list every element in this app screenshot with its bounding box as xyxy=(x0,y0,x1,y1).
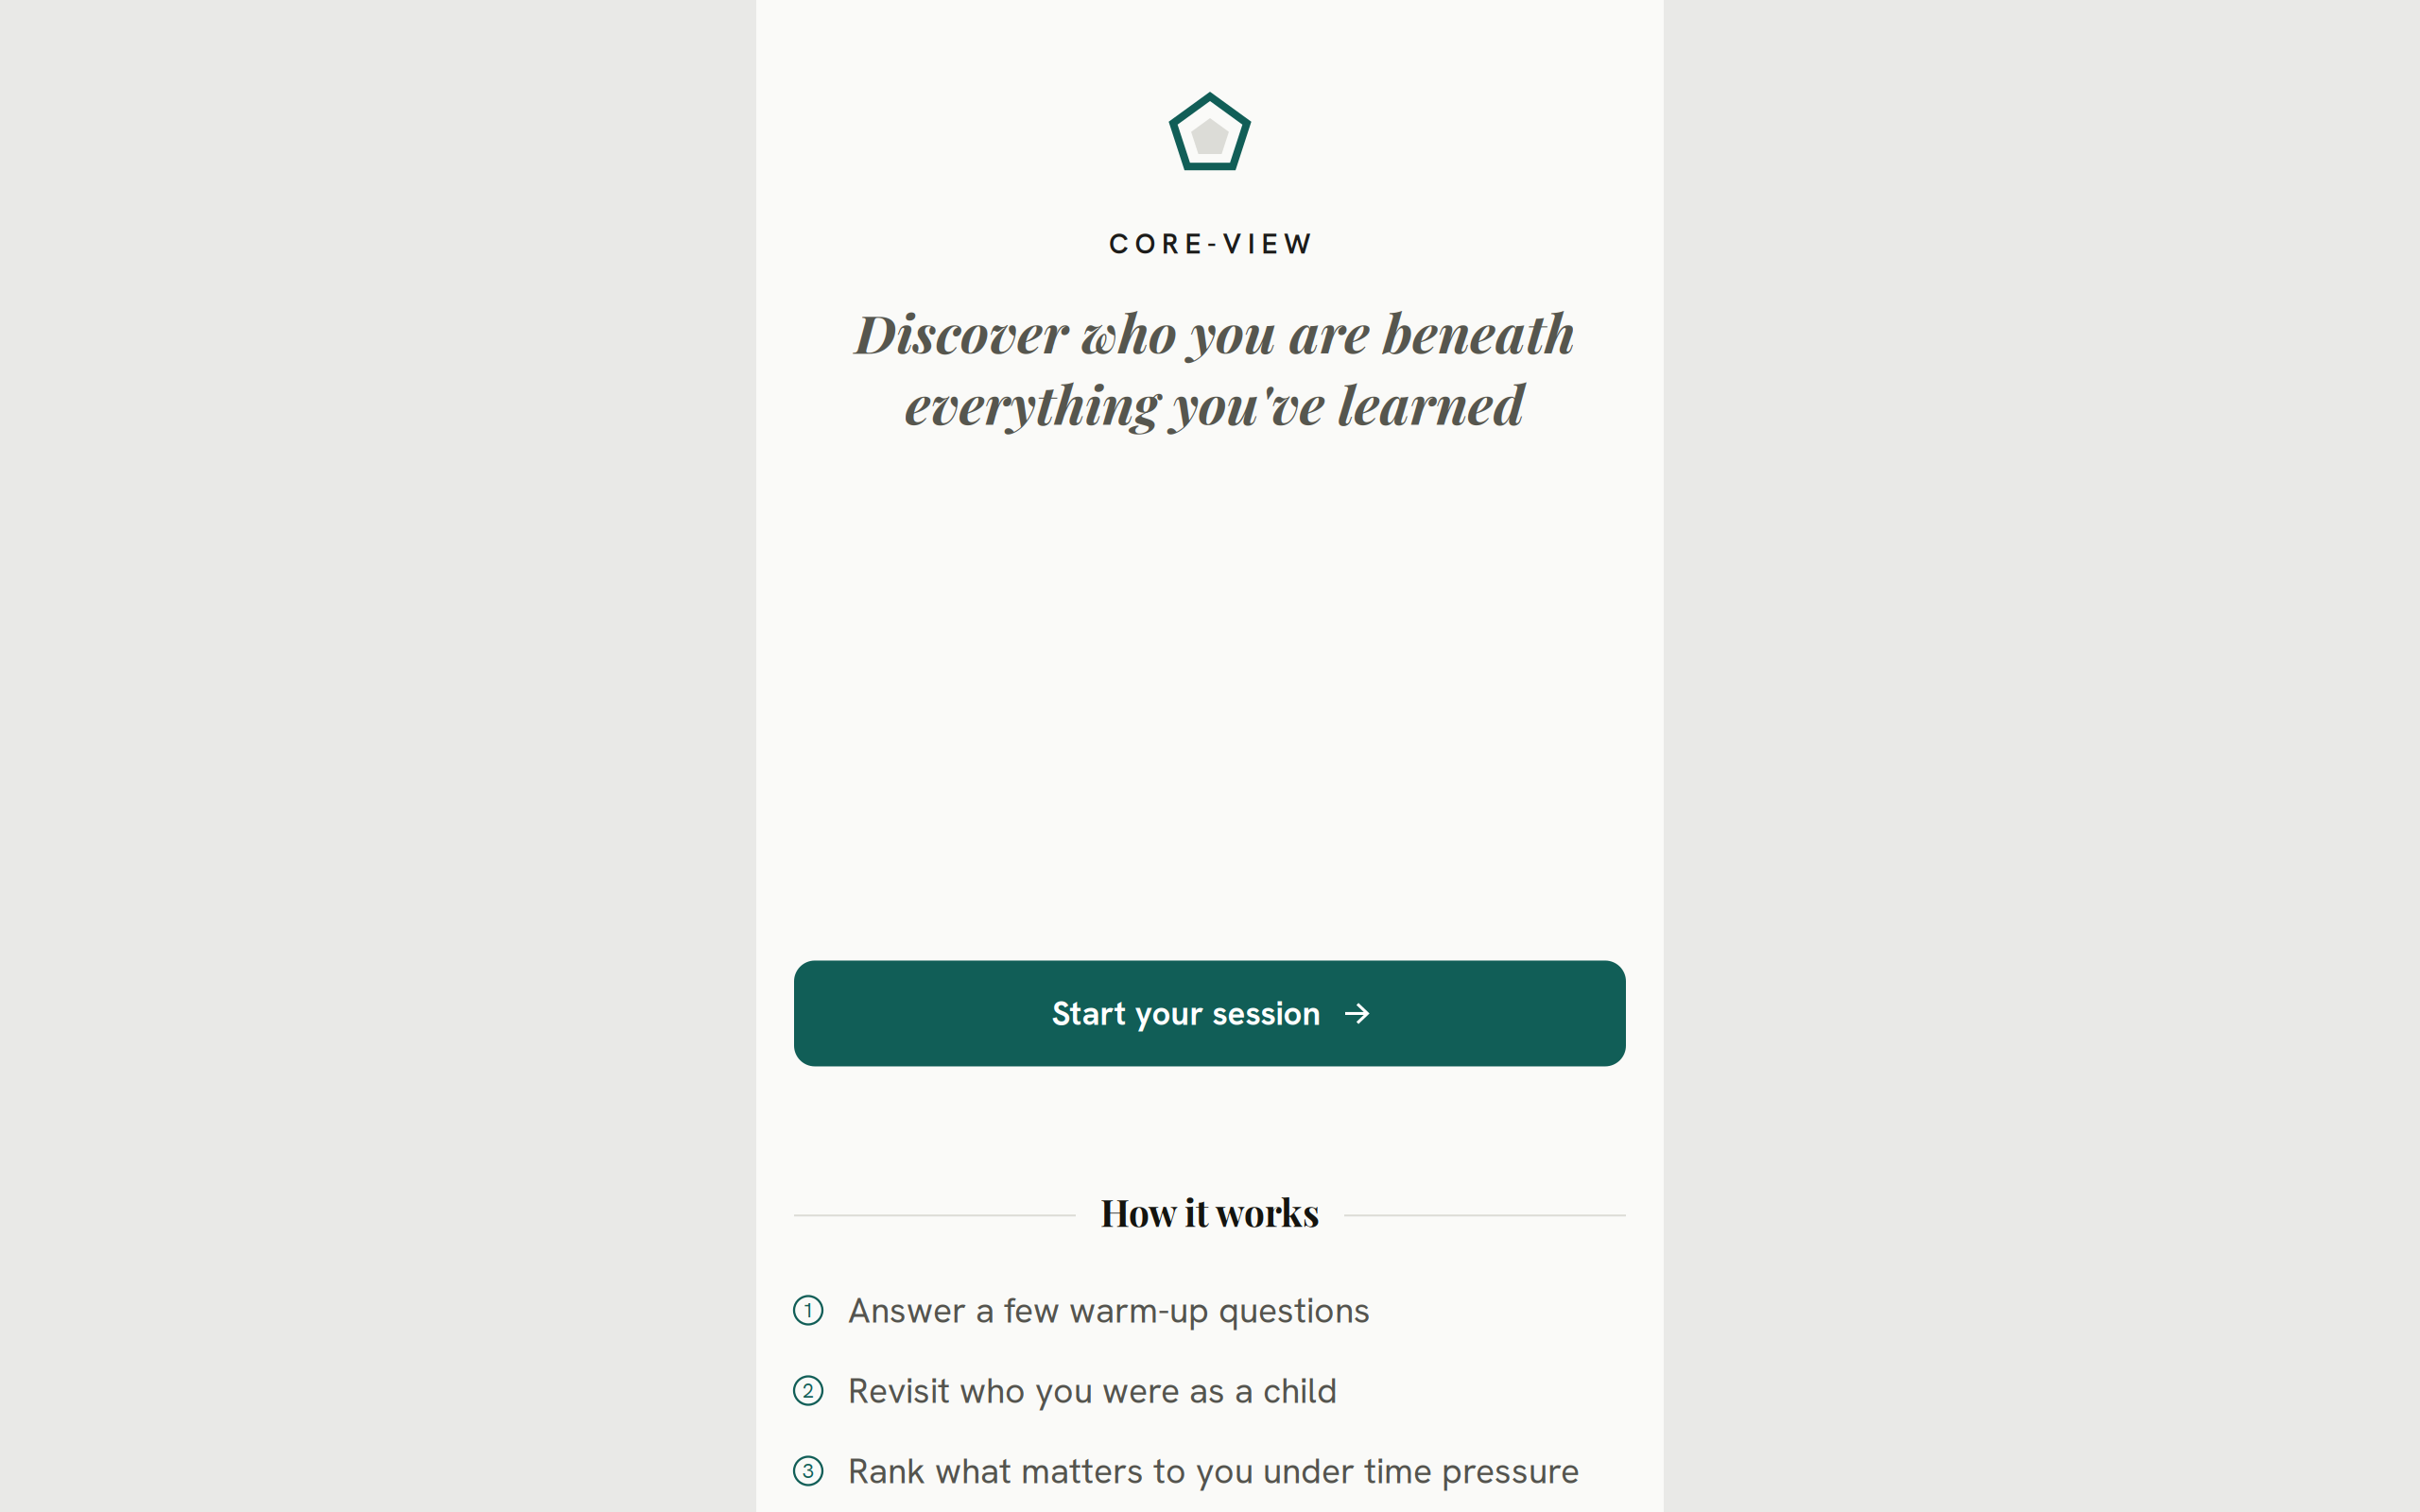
staticText: Start your session xyxy=(1052,992,1321,1035)
staticText: Rank what matters to you under time pres… xyxy=(848,1448,1580,1494)
staticText: 1 xyxy=(803,1297,814,1323)
staticText: 2 xyxy=(803,1377,814,1404)
staticText: R xyxy=(1162,226,1179,262)
staticText: How it works xyxy=(1100,1187,1320,1236)
staticText: I xyxy=(1248,226,1255,262)
staticText: 3 xyxy=(803,1458,814,1484)
staticText: E xyxy=(1262,226,1278,262)
staticText: O xyxy=(1135,226,1156,262)
staticText: W xyxy=(1284,226,1311,262)
staticText: C xyxy=(1109,226,1129,262)
staticText: Discover who you are beneath everything … xyxy=(855,296,1575,439)
button[interactable]: Start your session xyxy=(794,961,1626,1066)
staticText: Revisit who you were as a child xyxy=(848,1368,1338,1414)
staticText: Answer a few warm-up questions xyxy=(848,1287,1371,1333)
staticText: V xyxy=(1223,226,1242,262)
staticText: E xyxy=(1185,226,1201,262)
staticText: - xyxy=(1207,226,1217,262)
